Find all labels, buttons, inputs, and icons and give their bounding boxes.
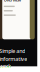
staticText: Overview	[4, 0, 21, 3]
staticText: Simple and	[0, 47, 25, 54]
staticText: informative work	[0, 55, 27, 70]
